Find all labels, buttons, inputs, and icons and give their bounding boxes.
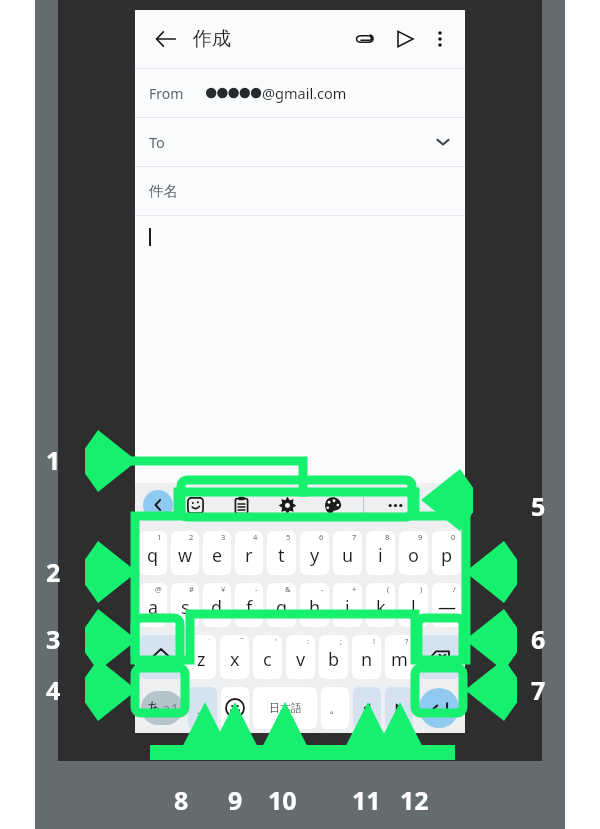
staticText: b: [328, 647, 340, 672]
button[interactable]: Settings: [273, 491, 301, 519]
staticText: j: [345, 595, 350, 620]
button[interactable]: Themes: [318, 491, 346, 519]
staticText: 8: [385, 532, 390, 542]
staticText: 3: [221, 532, 226, 542]
staticText: 件名: [149, 182, 178, 200]
button[interactable]: [135, 216, 465, 483]
staticText: 、: [196, 700, 209, 716]
staticText: &: [285, 584, 291, 594]
button[interactable]: -: [300, 583, 329, 627]
staticText: -: [321, 584, 324, 594]
staticText: :: [307, 636, 310, 646]
button[interactable]: 5: [267, 531, 296, 575]
button[interactable]: Emoji: [221, 687, 249, 729]
button[interactable]: Back: [149, 22, 183, 56]
staticText: To: [149, 132, 165, 152]
staticText: !: [373, 636, 376, 646]
button[interactable]: Backspace: [418, 635, 461, 679]
button[interactable]: +: [333, 583, 362, 627]
button[interactable]: 6: [300, 531, 329, 575]
button[interactable]: From: [135, 69, 465, 117]
staticText: /: [453, 584, 456, 594]
button[interactable]: 件名: [135, 167, 465, 215]
staticText: ˙: [209, 636, 211, 646]
staticText: 12: [400, 783, 429, 817]
button[interactable]: ˙: [187, 635, 216, 679]
staticText: 7: [352, 532, 357, 542]
staticText: 1: [157, 532, 162, 542]
staticText: 7: [531, 673, 546, 707]
staticText: From: [149, 84, 184, 103]
staticText: 1: [46, 443, 61, 477]
button[interactable]: ;: [319, 635, 348, 679]
button[interactable]: Expand toolbar: [143, 490, 173, 520]
button[interactable]: 0: [432, 531, 461, 575]
button[interactable]: あ: [139, 687, 184, 729]
button[interactable]: 2: [171, 531, 199, 575]
staticText: あ: [146, 699, 162, 718]
button[interactable]: :: [286, 635, 315, 679]
staticText: c: [263, 647, 272, 672]
button[interactable]: Enter: [417, 687, 461, 729]
staticText: 3: [46, 622, 61, 656]
button[interactable]: -: [235, 583, 263, 627]
button[interactable]: 8: [366, 531, 395, 575]
button[interactable]: Send: [389, 23, 421, 55]
button[interactable]: &: [267, 583, 296, 627]
staticText: h: [309, 595, 321, 620]
button[interactable]: Voice input: [426, 491, 454, 519]
button[interactable]: Cursor right: [385, 687, 413, 729]
button[interactable]: To: [135, 118, 465, 166]
button[interactable]: 7: [333, 531, 362, 575]
staticText: 5: [531, 489, 546, 523]
staticText: x: [230, 647, 240, 672]
staticText: r: [245, 543, 253, 568]
button[interactable]: Shift: [139, 635, 183, 679]
button[interactable]: More options: [425, 24, 455, 54]
staticText: u: [342, 543, 354, 568]
staticText: ): [420, 584, 423, 594]
staticText: f: [246, 595, 253, 620]
staticText: 日本語: [269, 701, 302, 715]
button[interactable]: ¯: [220, 635, 249, 679]
button[interactable]: Cursor left: [353, 687, 381, 729]
staticText: i: [378, 543, 383, 568]
staticText: s: [181, 595, 190, 620]
staticText: l: [411, 595, 416, 620]
staticText: ;: [340, 636, 343, 646]
staticText: 。: [329, 700, 342, 716]
button[interactable]: ): [399, 583, 428, 627]
button[interactable]: ?: [385, 635, 414, 679]
button[interactable]: 。: [321, 687, 349, 729]
staticText: p: [441, 543, 453, 568]
button[interactable]: 日本語: [253, 687, 317, 729]
staticText: 9: [228, 783, 243, 817]
button[interactable]: ¥: [203, 583, 231, 627]
button[interactable]: 9: [399, 531, 428, 575]
button[interactable]: Attach file: [349, 23, 381, 55]
staticText: g: [276, 595, 288, 620]
staticText: k: [376, 595, 386, 620]
staticText: (: [387, 584, 390, 594]
staticText: 10: [268, 783, 297, 817]
staticText: @gmail.com: [262, 83, 347, 103]
staticText: 2: [189, 532, 194, 542]
button[interactable]: !: [352, 635, 381, 679]
button[interactable]: ': [253, 635, 282, 679]
staticText: -: [255, 584, 258, 594]
button[interactable]: Clipboard: [227, 491, 255, 519]
button[interactable]: 4: [235, 531, 263, 575]
button[interactable]: @: [139, 583, 167, 627]
button[interactable]: 3: [203, 531, 231, 575]
button[interactable]: 、: [188, 687, 217, 729]
staticText: 4: [46, 673, 61, 707]
button[interactable]: More: [381, 491, 409, 519]
button[interactable]: #: [171, 583, 199, 627]
staticText: a: [148, 595, 159, 620]
button[interactable]: Stickers: [181, 491, 209, 519]
staticText: ¯: [240, 636, 244, 646]
staticText: +: [352, 584, 357, 594]
button[interactable]: 1: [139, 531, 167, 575]
button[interactable]: /: [432, 583, 461, 627]
button[interactable]: (: [366, 583, 395, 627]
